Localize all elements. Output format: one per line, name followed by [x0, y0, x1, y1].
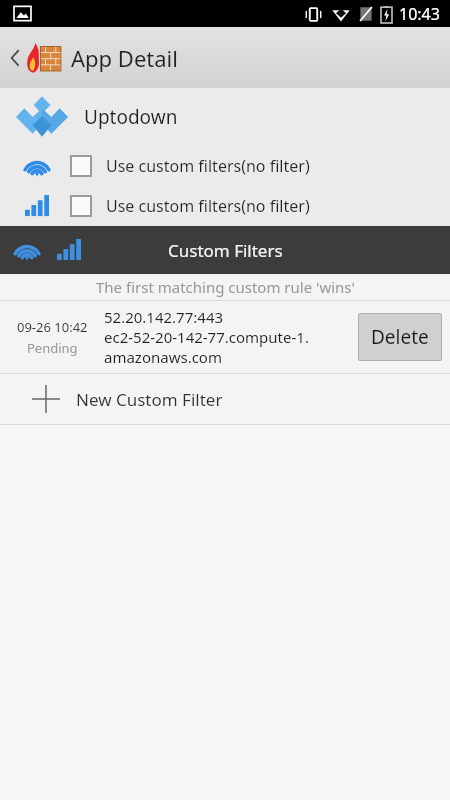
- button[interactable]: Back: [0, 27, 450, 88]
- button[interactable]: Uptodown: [0, 88, 450, 146]
- staticText: The first matching custom rule 'wins': [96, 277, 355, 297]
- staticText: Custom Filters: [168, 239, 283, 262]
- staticText: 09-26 10:42: [17, 318, 88, 336]
- button[interactable]: 09-26 10:42: [0, 301, 450, 373]
- staticText: amazonaws.com: [104, 347, 222, 367]
- staticText: Delete: [371, 324, 429, 350]
- staticText: App Detail: [71, 43, 178, 73]
- staticText: ec2-52-20-142-77.compute-1.: [104, 327, 309, 347]
- staticText: Use custom filters(no filter): [106, 195, 310, 217]
- staticText: Pending: [27, 339, 78, 357]
- button[interactable]: Delete: [358, 313, 442, 361]
- staticText: Use custom filters(no filter): [106, 155, 310, 177]
- staticText: New Custom Filter: [76, 388, 223, 411]
- staticText: 52.20.142.77:443: [104, 307, 224, 327]
- button[interactable]: Use custom filters(no filter): [0, 186, 450, 226]
- other: Back: [8, 46, 22, 70]
- other: Add new custom filter: [32, 385, 60, 413]
- button[interactable]: Add new custom filter: [0, 374, 450, 424]
- button[interactable]: Use custom filters(no filter): [0, 146, 450, 186]
- staticText: Uptodown: [84, 104, 178, 130]
- staticText: 10:43: [399, 3, 440, 25]
